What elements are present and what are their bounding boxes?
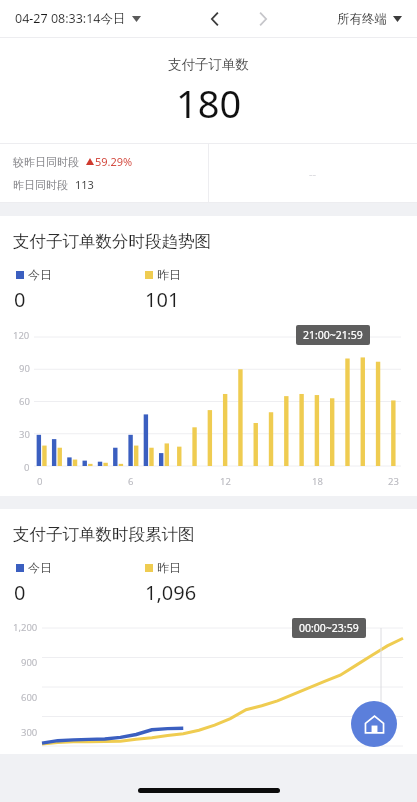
staticText: 0 <box>14 286 26 313</box>
button[interactable]: 较昨日同时段 <box>13 144 208 202</box>
staticText: 59.29% <box>95 154 133 169</box>
staticText: 所有终端 <box>337 11 387 27</box>
staticText: 昨日同时段 <box>13 178 68 192</box>
staticText: 0 <box>37 475 43 488</box>
staticText: 0 <box>14 579 26 606</box>
button[interactable]: 昨日 <box>145 267 181 282</box>
staticText: 6 <box>128 475 134 488</box>
button[interactable]: Home <box>351 701 397 747</box>
staticText: 00:00~23:59 <box>299 621 359 635</box>
button[interactable]: 所有终端 <box>337 11 402 27</box>
staticText: 23 <box>388 475 399 488</box>
staticText: 支付子订单数 <box>168 56 249 73</box>
button[interactable]: 今日 <box>16 267 145 282</box>
staticText: 21:00~21:59 <box>303 328 363 342</box>
staticText: 120 <box>13 329 30 342</box>
button[interactable]: 04-27 08:33:14今日 <box>15 10 141 27</box>
staticText: 今日 <box>28 267 52 282</box>
staticText: 600 <box>21 691 38 704</box>
staticText: 60 <box>19 395 30 408</box>
staticText: 12 <box>220 475 231 488</box>
staticText: 1,096 <box>145 579 197 606</box>
staticText: 0 <box>24 461 30 474</box>
button[interactable]: 昨日 <box>145 560 181 575</box>
button[interactable]: Next day <box>251 7 275 31</box>
staticText: 180 <box>176 77 242 129</box>
staticText: -- <box>309 166 317 181</box>
staticText: 18 <box>312 475 323 488</box>
staticText: 101 <box>145 286 180 313</box>
staticText: 1,200 <box>13 621 38 634</box>
staticText: 113 <box>75 177 94 192</box>
button[interactable]: Previous day <box>203 7 227 31</box>
staticText: 支付子订单数时段累计图 <box>13 524 195 545</box>
staticText: 支付子订单数分时段趋势图 <box>13 231 211 252</box>
staticText: 30 <box>19 428 30 441</box>
staticText: 较昨日同时段 <box>13 155 79 169</box>
staticText: 昨日 <box>157 267 181 282</box>
staticText: 300 <box>21 726 38 739</box>
staticText: 900 <box>21 656 38 669</box>
staticText: 90 <box>19 362 30 375</box>
staticText: 今日 <box>28 560 52 575</box>
staticText: 昨日 <box>157 560 181 575</box>
button[interactable]: 今日 <box>16 560 145 575</box>
staticText: 04-27 08:33:14今日 <box>15 10 126 27</box>
